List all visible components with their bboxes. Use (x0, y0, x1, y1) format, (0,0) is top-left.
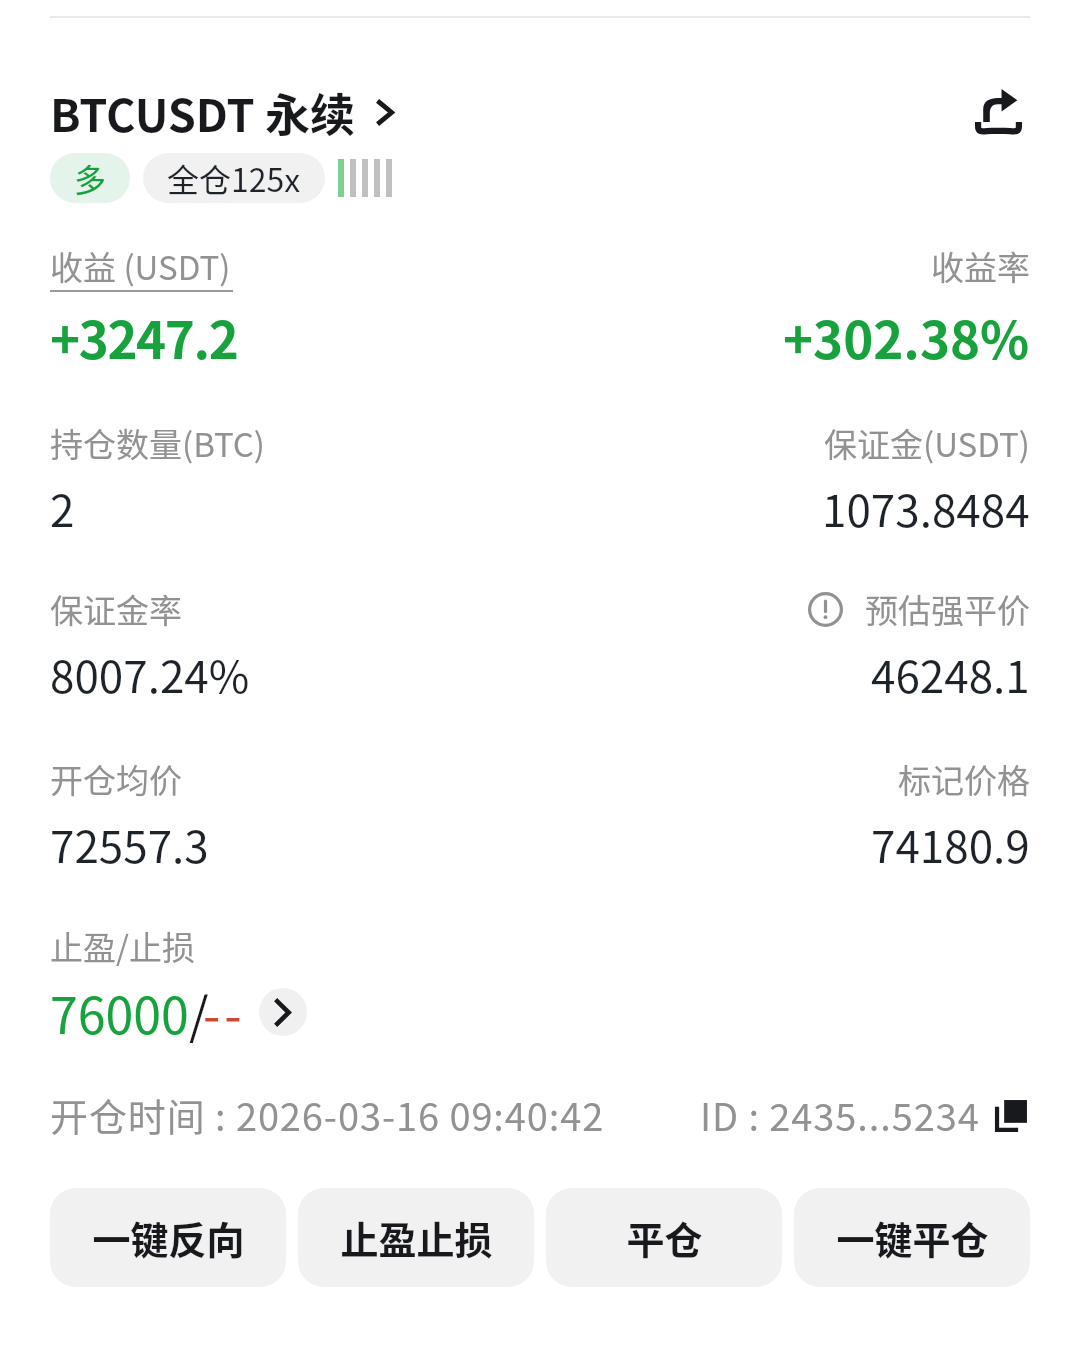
staticText: 止盈止损 (340, 1210, 493, 1265)
button[interactable]: 一键平仓 (794, 1188, 1030, 1287)
staticText: 1073.8484 (822, 476, 1030, 540)
staticText: 多 (74, 155, 107, 201)
button[interactable]: 全仓125x (143, 153, 325, 203)
button[interactable]: BTCUSDT 永续 (50, 80, 394, 145)
button[interactable]: 平仓 (546, 1188, 782, 1287)
staticText: 标记价格 (898, 755, 1030, 803)
staticText: 72557.3 (50, 812, 209, 876)
button[interactable]: 一键反向 (50, 1188, 286, 1287)
button[interactable]: 多 (50, 153, 130, 203)
staticText: +302.38% (783, 300, 1030, 374)
staticText: 收益 (USDT) (50, 242, 231, 290)
staticText: 保证金率 (50, 585, 182, 633)
button[interactable]: Risk level (338, 159, 392, 197)
staticText: 平仓 (626, 1210, 703, 1265)
button[interactable]: 止盈止损 (298, 1188, 534, 1287)
staticText: ID : 2435...5234 (700, 1087, 980, 1142)
staticText: 76000 (50, 976, 189, 1048)
staticText: 收益率 (931, 242, 1030, 290)
staticText: 保证金(USDT) (824, 419, 1030, 467)
staticText: 止盈/止损 (50, 922, 195, 970)
staticText: 8007.24% (50, 642, 250, 706)
staticText: 74180.9 (871, 812, 1030, 876)
staticText: 开仓均价 (50, 755, 182, 803)
button[interactable]: Copy ID (992, 1095, 1032, 1135)
staticText: 一键反向 (92, 1210, 245, 1265)
staticText: 一键平仓 (836, 1210, 989, 1265)
button[interactable]: 收益 (USDT) (50, 242, 233, 292)
staticText: 2 (50, 476, 75, 540)
staticText: / (189, 976, 209, 1048)
staticText: 开仓时间 : 2026-03-16 09:40:42 (50, 1087, 605, 1142)
staticText: 预估强平价 (865, 585, 1030, 633)
staticText: +3247.2 (50, 300, 238, 374)
staticText: 46248.1 (871, 642, 1030, 706)
button[interactable]: 76000 (50, 976, 307, 1048)
staticText: -- (203, 976, 246, 1048)
staticText: 持仓数量(BTC) (50, 419, 266, 467)
staticText: 全仓125x (167, 155, 301, 201)
button[interactable]: Share (955, 68, 1041, 154)
staticText: BTCUSDT 永续 (50, 80, 355, 145)
